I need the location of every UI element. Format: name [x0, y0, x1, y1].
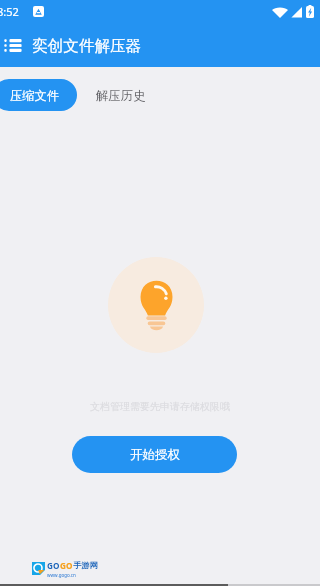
staticText: 解压历史 [96, 88, 146, 103]
button[interactable]: Menu [0, 24, 25, 67]
staticText: 8:52 [0, 4, 19, 19]
button[interactable]: 解压历史 [80, 79, 162, 111]
staticText: GO [60, 560, 73, 571]
staticText: 压缩文件 [10, 88, 60, 103]
staticText: GO [47, 560, 60, 571]
staticText: www.gogo.cn [47, 572, 76, 578]
button[interactable]: 压缩文件 [0, 79, 77, 111]
staticText: 开始授权 [130, 447, 180, 463]
staticText: 文档管理需要先申请存储权限哦 [90, 400, 230, 413]
staticText: 手游网 [73, 560, 98, 570]
button[interactable]: 开始授权 [72, 436, 237, 473]
staticText: 奕创文件解压器 [32, 36, 142, 56]
